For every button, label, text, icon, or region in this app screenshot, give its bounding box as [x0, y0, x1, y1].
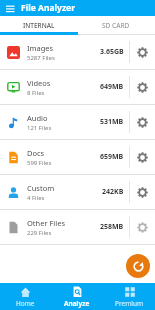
staticText: 599 Files: [27, 159, 52, 167]
button[interactable]: [130, 140, 155, 174]
button[interactable]: Images: [0, 35, 155, 69]
staticText: 242KB: [102, 187, 124, 197]
staticText: Premium: [115, 299, 144, 308]
staticText: 5287 Files: [27, 54, 55, 62]
button[interactable]: Analyze: [51, 283, 103, 310]
staticText: 8 Files: [27, 89, 45, 97]
staticText: 258MB: [100, 222, 124, 232]
staticText: Other Files: [27, 218, 66, 228]
button[interactable]: Premium: [103, 283, 155, 310]
button[interactable]: [0, 0, 21, 16]
button[interactable]: [126, 254, 150, 278]
button[interactable]: [130, 210, 155, 244]
staticText: 121 Files: [27, 124, 52, 132]
staticText: Images: [27, 43, 54, 53]
staticText: Analyze: [64, 299, 90, 308]
staticText: 3.65GB: [100, 47, 124, 57]
button[interactable]: Audio: [0, 105, 155, 139]
button[interactable]: Custom: [0, 175, 155, 209]
staticText: 649MB: [100, 82, 124, 92]
staticText: Videos: [27, 78, 51, 88]
button[interactable]: Videos: [0, 70, 155, 104]
staticText: Docs: [27, 148, 45, 158]
staticText: 531MB: [100, 117, 124, 127]
button[interactable]: INTERNAL: [0, 16, 77, 35]
button[interactable]: Home: [0, 283, 51, 310]
button[interactable]: Other Files: [0, 210, 155, 244]
staticText: Custom: [27, 183, 55, 193]
button[interactable]: [130, 105, 155, 139]
button[interactable]: [130, 70, 155, 104]
button[interactable]: Docs: [0, 140, 155, 174]
button[interactable]: SD CARD: [77, 16, 155, 35]
staticText: File Analyzer: [21, 2, 75, 14]
staticText: INTERNAL: [23, 21, 55, 30]
staticText: Home: [16, 299, 35, 308]
staticText: SD CARD: [102, 21, 130, 30]
staticText: Audio: [27, 113, 48, 123]
staticText: 4 Files: [27, 194, 45, 202]
staticText: 659MB: [100, 152, 124, 162]
button[interactable]: [130, 175, 155, 209]
staticText: 229 Files: [27, 229, 52, 237]
button[interactable]: [130, 35, 155, 69]
